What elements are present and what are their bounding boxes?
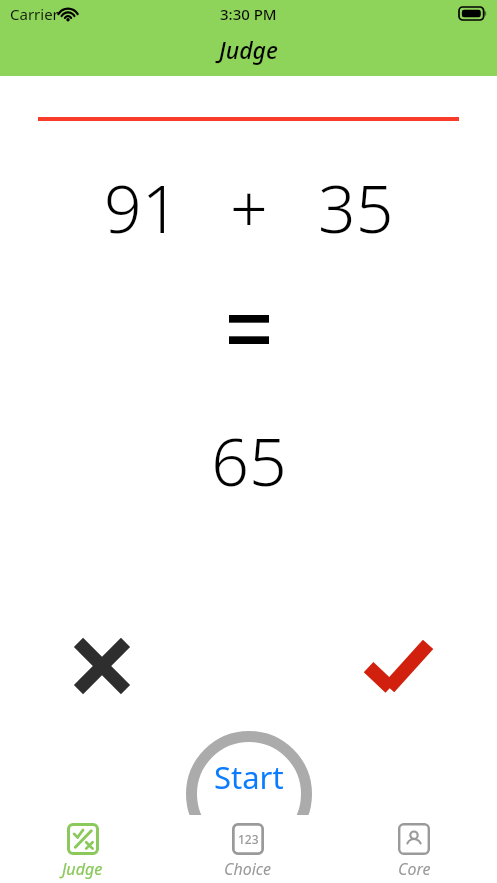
button[interactable]: Correct bbox=[350, 621, 445, 711]
staticText: 3:30 PM bbox=[220, 4, 277, 24]
button[interactable]: Judge bbox=[0, 815, 165, 883]
staticText: 91 bbox=[104, 162, 180, 252]
staticText: Carrier bbox=[10, 4, 59, 24]
staticText: Choice bbox=[224, 858, 272, 880]
staticText: 65 bbox=[211, 415, 287, 505]
button[interactable]: Start bbox=[186, 731, 312, 857]
staticText: Judge bbox=[62, 858, 103, 880]
staticText: Start bbox=[214, 756, 284, 798]
staticText: 123 bbox=[238, 831, 259, 847]
staticText: Core bbox=[398, 858, 431, 880]
button[interactable]: 123 bbox=[165, 815, 331, 883]
button[interactable]: Core bbox=[331, 815, 497, 883]
staticText: Judge bbox=[219, 34, 278, 65]
button[interactable]: Wrong bbox=[57, 621, 147, 711]
staticText: 35 bbox=[318, 162, 394, 252]
staticText: + bbox=[230, 162, 268, 252]
